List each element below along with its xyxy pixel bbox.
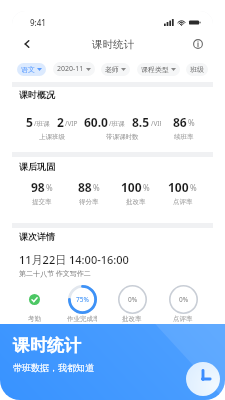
staticText: 课时概况	[19, 89, 55, 100]
staticText: 带班数据，我都知道	[13, 362, 94, 373]
staticText: 语文	[21, 65, 35, 74]
staticText: /班课	[109, 119, 125, 128]
staticText: 9:41	[30, 17, 46, 28]
staticText: %	[46, 182, 53, 193]
staticText: %	[93, 182, 100, 193]
staticText: 课后巩固	[19, 161, 55, 172]
staticText: 2	[57, 114, 64, 130]
staticText: 班级	[190, 65, 204, 74]
staticText: 批改率	[126, 198, 146, 206]
staticText: 0%	[179, 295, 189, 304]
button[interactable]: Info	[188, 34, 208, 54]
staticText: 考勤	[28, 315, 41, 323]
staticText: 带课课时数	[106, 133, 139, 141]
staticText: 86	[173, 114, 187, 130]
staticText: 课次详情	[19, 231, 55, 242]
staticText: 续班率	[174, 133, 194, 141]
staticText: 老师	[105, 65, 119, 74]
staticText: 提交率	[32, 198, 52, 206]
staticText: 75%	[76, 295, 89, 304]
staticText: /VIP	[151, 119, 161, 128]
button[interactable]: Clock	[186, 362, 220, 396]
staticText: 60.0	[84, 114, 108, 130]
staticText: 课时统计	[92, 38, 134, 51]
staticText: 5	[26, 114, 33, 130]
button[interactable]: 2020-11	[53, 62, 95, 76]
button[interactable]: 课程类型	[137, 63, 180, 76]
button[interactable]: 班级	[186, 63, 208, 76]
staticText: 得分率	[79, 198, 99, 206]
button[interactable]: 老师	[101, 63, 130, 76]
staticText: 0%	[128, 295, 138, 304]
staticText: 100	[168, 179, 189, 195]
staticText: 作业完成率	[67, 315, 97, 323]
staticText: %	[190, 182, 197, 193]
staticText: 上课班级	[39, 133, 65, 141]
staticText: %	[188, 117, 195, 128]
staticText: 点评率	[173, 315, 193, 323]
staticText: 8.5	[132, 114, 150, 130]
staticText: %	[143, 182, 150, 193]
staticText: 11月22日 14:00-16:00	[19, 252, 129, 267]
staticText: 第二十八节 作文写作二	[19, 269, 91, 279]
staticText: 课程类型	[141, 65, 169, 74]
staticText: 课时统计	[13, 335, 81, 356]
staticText: 批改率	[122, 315, 142, 323]
staticText: 点评率	[173, 198, 193, 206]
staticText: 2020-11	[57, 64, 84, 74]
button[interactable]: 语文	[17, 63, 46, 76]
staticText: /VIP	[65, 119, 78, 128]
staticText: 98	[31, 179, 45, 195]
staticText: 100	[121, 179, 142, 195]
staticText: /班课	[34, 119, 50, 128]
staticText: 88	[78, 179, 92, 195]
button[interactable]: Back	[17, 34, 37, 54]
